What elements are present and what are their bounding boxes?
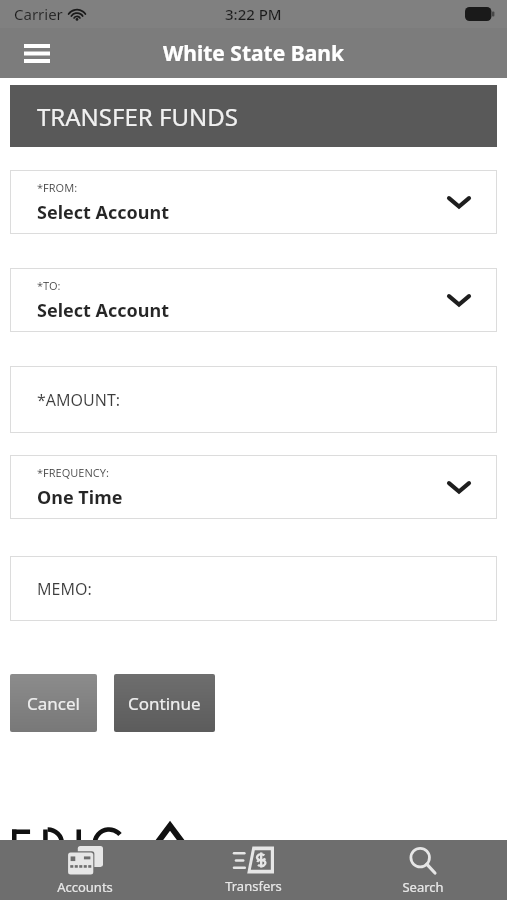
- staticText: 3:22 PM: [225, 4, 282, 24]
- button[interactable]: *FREQUENCY:: [10, 455, 497, 519]
- staticText: One Time: [37, 485, 123, 510]
- staticText: Cancel: [27, 692, 80, 715]
- staticText: Search: [402, 878, 444, 896]
- button[interactable]: *FROM:: [10, 170, 497, 234]
- button[interactable]: Menu: [14, 30, 60, 76]
- staticText: MEMO:: [37, 578, 92, 600]
- staticText: *FREQUENCY:: [37, 465, 109, 480]
- button[interactable]: Continue: [114, 674, 215, 732]
- button[interactable]: Transfers: [169, 840, 338, 900]
- staticText: Transfers: [225, 877, 282, 895]
- button[interactable]: Cancel: [10, 674, 97, 732]
- button[interactable]: Search: [338, 840, 507, 900]
- staticText: TRANSFER FUNDS: [37, 100, 238, 133]
- staticText: Select Account: [37, 200, 170, 225]
- staticText: White State Bank: [163, 39, 344, 68]
- staticText: *FROM:: [37, 180, 78, 195]
- staticText: *TO:: [37, 278, 61, 293]
- button[interactable]: Accounts: [0, 840, 169, 900]
- staticText: Select Account: [37, 298, 170, 323]
- staticText: Carrier: [14, 4, 63, 24]
- staticText: Accounts: [57, 878, 113, 896]
- staticText: *AMOUNT:: [37, 389, 121, 411]
- button[interactable]: *TO:: [10, 268, 497, 332]
- staticText: Continue: [128, 692, 201, 715]
- button[interactable]: MEMO:: [10, 556, 497, 621]
- button[interactable]: *AMOUNT:: [10, 366, 497, 433]
